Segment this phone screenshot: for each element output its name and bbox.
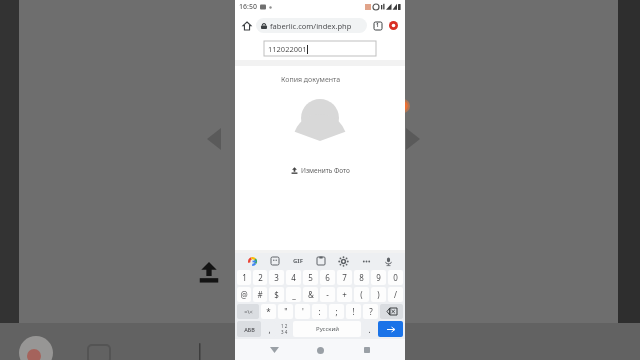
- button[interactable]: GIF: [291, 254, 305, 268]
- button[interactable]: Home: [312, 342, 328, 358]
- staticText: &: [308, 289, 314, 300]
- button[interactable]: #: [253, 287, 267, 302]
- button[interactable]: Изменить Фото: [235, 164, 405, 177]
- button[interactable]: 0: [388, 270, 403, 285]
- button[interactable]: 1 2: [278, 321, 291, 337]
- button[interactable]: 3: [269, 270, 284, 285]
- button[interactable]: Clipboard: [315, 255, 327, 267]
- staticText: !: [352, 306, 355, 317]
- button[interactable]: ": [278, 304, 293, 319]
- button[interactable]: Back: [266, 342, 282, 358]
- button[interactable]: АБВ: [237, 321, 261, 337]
- button[interactable]: @: [237, 287, 251, 302]
- staticText: 2: [258, 272, 263, 283]
- button[interactable]: faberlic.com/index.php: [256, 18, 367, 33]
- button[interactable]: =\<: [237, 304, 259, 319]
- staticText: ;: [335, 306, 338, 317]
- staticText: 6: [325, 272, 330, 283]
- button[interactable]: $: [269, 287, 284, 302]
- button[interactable]: More: [360, 255, 372, 267]
- button[interactable]: Google: [246, 255, 258, 267]
- button[interactable]: /: [388, 287, 403, 302]
- staticText: $: [274, 289, 279, 300]
- staticText: ): [377, 289, 380, 300]
- button[interactable]: _: [286, 287, 301, 302]
- staticText: 8: [359, 272, 364, 283]
- button[interactable]: ,: [263, 321, 276, 337]
- staticText: ?: [369, 306, 373, 317]
- staticText: 7: [342, 272, 347, 283]
- staticText: 9: [376, 272, 381, 283]
- button[interactable]: ): [371, 287, 386, 302]
- staticText: 1 2: [281, 323, 288, 329]
- staticText: ,: [268, 324, 271, 335]
- staticText: 112022001: [268, 44, 307, 54]
- button[interactable]: Recents: [359, 342, 375, 358]
- button[interactable]: ;: [329, 304, 344, 319]
- staticText: #: [257, 289, 263, 300]
- button[interactable]: 1: [237, 270, 251, 285]
- button[interactable]: !: [346, 304, 361, 319]
- staticText: (: [360, 289, 363, 300]
- staticText: .: [368, 324, 371, 335]
- staticText: 16:50: [239, 2, 257, 12]
- button[interactable]: 5: [303, 270, 318, 285]
- button[interactable]: ': [295, 304, 310, 319]
- button[interactable]: -: [320, 287, 335, 302]
- staticText: 1: [242, 272, 247, 283]
- button[interactable]: (: [354, 287, 369, 302]
- staticText: @: [240, 289, 248, 300]
- button[interactable]: 112022001: [264, 41, 376, 56]
- staticText: -: [326, 289, 329, 300]
- button[interactable]: 7: [337, 270, 352, 285]
- staticText: =\<: [244, 308, 253, 315]
- button[interactable]: ?: [363, 304, 378, 319]
- staticText: 1: [376, 22, 379, 29]
- button[interactable]: Forward: [406, 128, 420, 150]
- button[interactable]: :: [312, 304, 327, 319]
- button[interactable]: Enter: [378, 321, 403, 337]
- button[interactable]: Tabs: [371, 19, 384, 32]
- staticText: _: [292, 289, 296, 300]
- staticText: 0: [393, 272, 398, 283]
- button[interactable]: 2: [253, 270, 267, 285]
- staticText: +: [342, 289, 347, 300]
- staticText: АБВ: [244, 326, 255, 333]
- button[interactable]: &: [303, 287, 318, 302]
- staticText: GIF: [293, 257, 303, 265]
- staticText: 5: [308, 272, 313, 283]
- staticText: ": [284, 306, 288, 317]
- staticText: Копия документа: [281, 75, 341, 85]
- button[interactable]: Rewind: [207, 128, 221, 150]
- button[interactable]: Settings: [337, 255, 349, 267]
- staticText: Изменить Фото: [301, 166, 350, 175]
- button[interactable]: 9: [371, 270, 386, 285]
- staticText: /: [394, 289, 397, 300]
- button[interactable]: Backspace: [380, 304, 403, 319]
- button[interactable]: 8: [354, 270, 369, 285]
- button[interactable]: Русский: [293, 321, 361, 337]
- button[interactable]: .: [363, 321, 376, 337]
- staticText: Русский: [316, 325, 339, 333]
- staticText: faberlic.com/index.php: [270, 21, 352, 31]
- button[interactable]: *: [261, 304, 276, 319]
- button[interactable]: Stickers: [269, 255, 281, 267]
- button[interactable]: +: [337, 287, 352, 302]
- staticText: 4: [291, 272, 296, 283]
- staticText: 3: [274, 272, 279, 283]
- staticText: ': [302, 306, 304, 317]
- staticText: :: [318, 306, 321, 317]
- button[interactable]: Voice input: [382, 255, 394, 267]
- button[interactable]: 4: [286, 270, 301, 285]
- button[interactable]: Menu: [387, 19, 400, 32]
- staticText: *: [266, 306, 271, 317]
- staticText: 3 4: [281, 329, 288, 335]
- button[interactable]: Home: [240, 19, 253, 32]
- button[interactable]: 6: [320, 270, 335, 285]
- button[interactable]: Share: [198, 261, 220, 283]
